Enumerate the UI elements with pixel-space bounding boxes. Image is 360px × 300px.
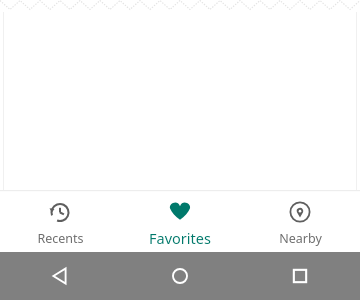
staticText: Recents <box>37 230 84 247</box>
staticText: Nearby <box>279 230 322 247</box>
button[interactable]: Home <box>120 252 240 300</box>
button[interactable]: Recents <box>0 190 120 252</box>
button[interactable]: Back <box>0 252 120 300</box>
staticText: Favorites <box>149 228 211 248</box>
button[interactable]: Nearby <box>240 190 360 252</box>
button[interactable]: Recent apps <box>240 252 360 300</box>
button[interactable]: Favorites <box>120 190 240 252</box>
